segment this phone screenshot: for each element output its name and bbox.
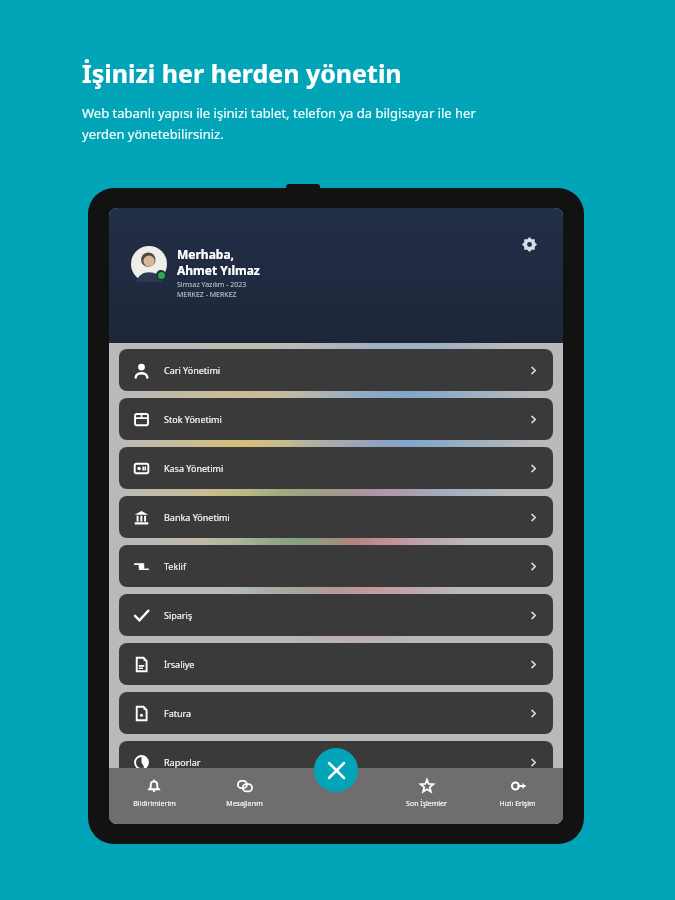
button[interactable]: Son İşlemler <box>381 768 472 824</box>
button[interactable]: Raporlar <box>119 741 553 783</box>
staticText: Son İşlemler <box>406 799 447 809</box>
staticText: MERKEZ - MERKEZ <box>177 290 237 300</box>
staticText: Merhaba, <box>177 246 235 262</box>
staticText: Hızlı Erişim <box>499 799 536 809</box>
staticText: Simsaz Yazılım - 2023 <box>177 280 247 290</box>
button[interactable]: Mesajlarım <box>199 768 290 824</box>
button[interactable]: Hızlı Erişim <box>472 768 563 824</box>
button[interactable]: Fatura <box>119 692 553 734</box>
button[interactable]: İrsaliye <box>119 643 553 685</box>
button[interactable]: Cari Yönetimi <box>119 349 553 391</box>
staticText: Raporlar <box>164 756 201 768</box>
button[interactable]: Bildirimlerim <box>109 768 199 824</box>
staticText: Web tabanlı yapısı ile işinizi tablet, t… <box>82 104 476 122</box>
staticText: Cari Yönetimi <box>164 364 221 376</box>
staticText: yerden yönetebilirsiniz. <box>82 125 224 143</box>
staticText: Bildirimlerim <box>133 799 176 809</box>
button[interactable]: Ayarlar <box>517 232 541 256</box>
button[interactable]: Stok Yönetimi <box>119 398 553 440</box>
button[interactable]: Banka Yönetimi <box>119 496 553 538</box>
staticText: Banka Yönetimi <box>164 511 230 523</box>
staticText: Kasa Yönetimi <box>164 462 224 474</box>
staticText: Ahmet Yılmaz <box>177 262 260 278</box>
staticText: Teklif <box>164 560 186 572</box>
staticText: Sipariş <box>164 609 193 621</box>
staticText: Stok Yönetimi <box>164 413 222 425</box>
staticText: Mesajlarım <box>226 799 263 809</box>
staticText: Fatura <box>164 707 192 719</box>
button[interactable] <box>119 790 553 810</box>
button[interactable]: Kapat <box>314 748 358 792</box>
staticText: İşinizi her herden yönetin <box>82 56 402 90</box>
button[interactable]: Kasa Yönetimi <box>119 447 553 489</box>
button[interactable]: Teklif <box>119 545 553 587</box>
button[interactable]: Sipariş <box>119 594 553 636</box>
staticText: İrsaliye <box>164 658 195 670</box>
